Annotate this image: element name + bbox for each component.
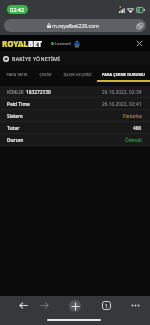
staticText: PARA YATIR (6, 72, 28, 77)
staticText: ÇEKİM (39, 72, 52, 77)
staticText: Ödendi (125, 137, 142, 144)
staticText: 163272130 (26, 89, 51, 96)
button[interactable]: Durum (0, 134, 150, 146)
button[interactable]: Back (16, 298, 30, 312)
staticText: Licensed (55, 41, 71, 46)
staticText: 02:42 (10, 6, 25, 13)
staticText: PARA ÇEKME DURUMU (102, 72, 145, 77)
button[interactable]: BAKİYE YÖNETİMİ (0, 51, 150, 66)
staticText: Sistem (7, 113, 23, 120)
button[interactable]: More options (128, 298, 142, 312)
button[interactable]: Paid Time (0, 98, 150, 110)
staticText: Paid Time (7, 101, 30, 108)
button[interactable]: PARA ÇEKME DURUMU (97, 66, 150, 82)
button[interactable]: İŞLEM GEÇMİŞİ (58, 66, 97, 82)
staticText: 26.10.2022, 02:39 (102, 89, 142, 96)
button[interactable]: ÇEKİM (33, 66, 58, 82)
button[interactable]: Forward (37, 298, 51, 312)
button[interactable]: Close (134, 38, 145, 49)
staticText: KİMLİK (7, 89, 24, 96)
button[interactable]: New tab (69, 300, 81, 312)
staticText: BET (28, 38, 42, 49)
staticText: İŞLEM GEÇMİŞİ (63, 72, 92, 77)
staticText: Fixturka (123, 113, 142, 120)
staticText: 26.10.2022, 02:41 (102, 101, 142, 108)
button[interactable]: Sistem (0, 110, 150, 122)
button[interactable]: PARA YATIR (0, 66, 33, 82)
button[interactable]: Share page (136, 22, 143, 29)
staticText: 1 (105, 303, 108, 309)
button[interactable]: KİMLİK (0, 86, 150, 98)
button[interactable]: Tutar (0, 122, 150, 134)
staticText: ROYAL (2, 38, 28, 49)
staticText: Durum (7, 137, 24, 144)
staticText: BAKİYE YÖNETİMİ (12, 55, 61, 62)
staticText: m.royalbet229.com (52, 22, 99, 29)
staticText: 480 (133, 125, 142, 132)
button[interactable]: m.royalbet229.com (4, 19, 146, 32)
staticText: Tutar (7, 125, 20, 132)
button[interactable]: Switch tabs (99, 298, 114, 313)
